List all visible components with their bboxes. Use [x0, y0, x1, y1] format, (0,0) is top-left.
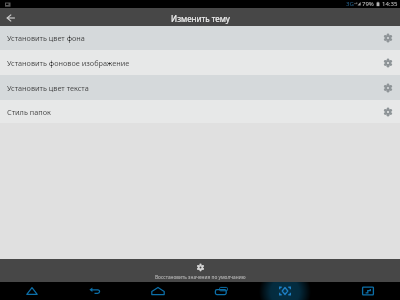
button[interactable]: Back — [2, 9, 20, 27]
button[interactable]: Back — [86, 282, 104, 300]
staticText: Установить цвет фона — [7, 33, 85, 43]
staticText: 3G — [346, 0, 354, 8]
button[interactable]: Recents — [212, 282, 230, 300]
staticText: Установить цвет текста — [7, 83, 89, 93]
staticText: Восстановить значения по умолчанию — [155, 274, 246, 281]
button[interactable]: Установить цвет фона — [0, 26, 400, 50]
staticText: Установить фоновое изображение — [7, 58, 130, 68]
button[interactable]: Expand — [359, 282, 377, 300]
button[interactable]: Settings — [378, 53, 398, 73]
staticText: 14:35 — [382, 0, 398, 8]
staticText: 79% — [362, 0, 374, 8]
button[interactable]: Screenshot — [276, 282, 294, 300]
button[interactable]: Стиль папок — [0, 100, 400, 123]
button[interactable]: Settings — [378, 102, 398, 122]
button[interactable]: Установить цвет текста — [0, 75, 400, 100]
button[interactable]: Settings — [378, 78, 398, 98]
button[interactable]: Восстановить значения по умолчанию — [0, 259, 400, 282]
staticText: Стиль папок — [7, 107, 51, 117]
button[interactable]: Установить фоновое изображение — [0, 50, 400, 75]
button[interactable]: Up — [23, 282, 41, 300]
staticText: Изменить тему — [171, 13, 230, 24]
button[interactable]: Home — [149, 282, 167, 300]
button[interactable]: Settings — [378, 28, 398, 48]
